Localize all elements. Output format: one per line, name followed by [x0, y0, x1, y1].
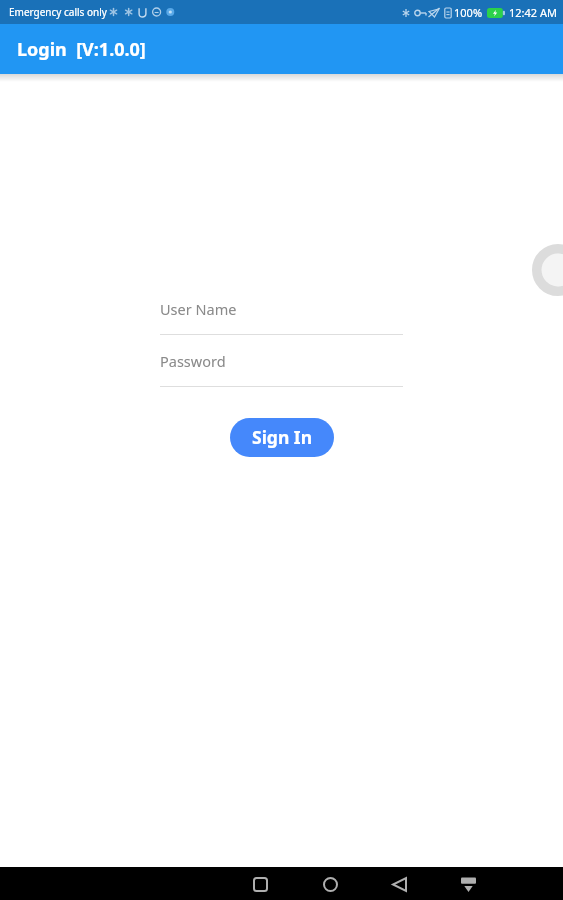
button[interactable]: Hide keyboard — [453, 869, 483, 899]
staticText: Emergency calls only — [9, 5, 107, 19]
button[interactable]: Sign In — [230, 418, 334, 457]
staticText: Sign In — [252, 425, 313, 449]
button[interactable]: Password — [160, 354, 403, 387]
staticText: Login [V:1.0.0] — [17, 37, 146, 62]
button[interactable]: User Name — [160, 302, 403, 335]
button[interactable]: Recents — [245, 869, 275, 899]
button[interactable]: Home — [315, 869, 345, 899]
staticText: User Name — [160, 299, 237, 319]
staticText: 12:42 AM — [509, 5, 557, 20]
button[interactable]: Assistive touch — [532, 244, 563, 296]
button[interactable]: Back — [384, 869, 414, 899]
staticText: 100% — [454, 5, 483, 20]
staticText: Password — [160, 351, 226, 371]
